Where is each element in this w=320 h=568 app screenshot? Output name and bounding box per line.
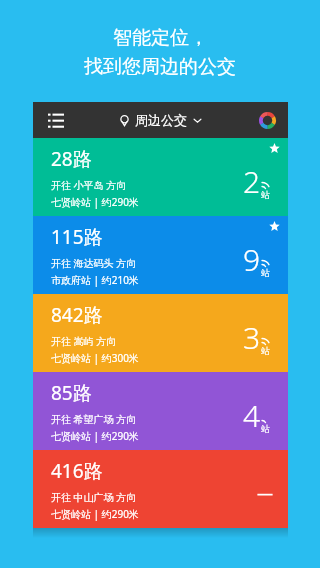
staticText: 开往 希望广场 方向: [51, 412, 137, 426]
staticText: 七贤岭站 | 约290米: [51, 507, 139, 521]
staticText: 416路: [51, 458, 103, 484]
button[interactable]: App: [255, 108, 279, 132]
button[interactable]: 周边公交: [119, 112, 202, 128]
button[interactable]: Menu: [43, 107, 69, 133]
staticText: 开往 嵩屿 方向: [51, 334, 117, 348]
button[interactable]: 28路: [33, 138, 288, 216]
staticText: 842路: [51, 302, 103, 328]
staticText: 站: [261, 345, 270, 356]
button[interactable]: 416路: [33, 450, 288, 528]
staticText: 站: [261, 423, 270, 434]
staticText: 85路: [51, 380, 92, 406]
staticText: 28路: [51, 146, 92, 172]
staticText: 七贤岭站 | 约300米: [51, 351, 139, 365]
staticText: 市政府站 | 约210米: [51, 273, 139, 287]
staticText: 4: [243, 395, 261, 436]
staticText: 周边公交: [135, 112, 187, 128]
button[interactable]: Menu: [33, 102, 288, 138]
button[interactable]: 115路: [33, 216, 288, 294]
staticText: 七贤岭站 | 约290米: [51, 429, 139, 443]
staticText: 开往 海达码头 方向: [51, 256, 137, 270]
staticText: —: [257, 482, 274, 504]
staticText: 3: [243, 317, 261, 358]
staticText: 2: [243, 161, 261, 202]
staticText: 9: [243, 239, 261, 280]
staticText: 站: [261, 189, 270, 200]
button[interactable]: 85路: [33, 372, 288, 450]
staticText: 开往 小平岛 方向: [51, 178, 127, 192]
staticText: 智能定位，: [113, 26, 208, 50]
staticText: 开往 中山广场 方向: [51, 490, 137, 504]
staticText: 站: [261, 267, 270, 278]
staticText: 找到您周边的公交: [84, 55, 236, 79]
staticText: 115路: [51, 224, 103, 250]
staticText: 七贤岭站 | 约290米: [51, 195, 139, 209]
button[interactable]: 842路: [33, 294, 288, 372]
